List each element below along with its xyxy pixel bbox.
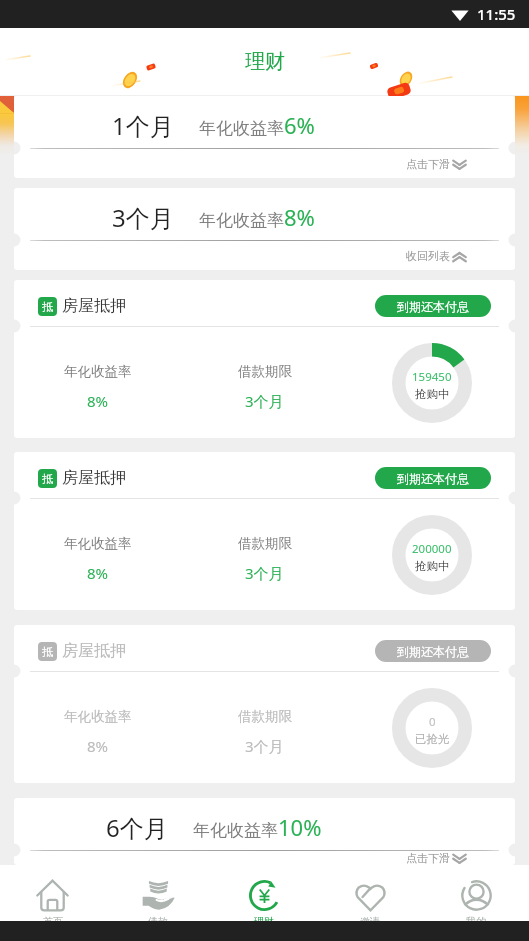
staticText: 年化收益率 <box>64 535 132 552</box>
staticText: 200000 <box>412 541 452 557</box>
staticText: 159450 <box>412 369 452 385</box>
staticText: 首页 <box>43 915 63 921</box>
button[interactable]: 邀请 <box>317 865 423 921</box>
staticText: 8% <box>87 736 109 756</box>
staticText: 年化收益率 <box>199 210 284 231</box>
staticText: 3个月 <box>245 563 284 583</box>
staticText: 3个月 <box>112 201 174 234</box>
staticText: 年化收益率 <box>193 820 278 841</box>
staticText: 3个月 <box>245 391 284 411</box>
button[interactable]: 我的 <box>423 865 529 921</box>
button[interactable]: 3个月 <box>14 188 515 270</box>
button[interactable]: 6个月 <box>14 798 515 865</box>
staticText: 借款期限 <box>238 363 292 380</box>
staticText: 已抢光 <box>415 732 450 746</box>
staticText: 1个月 <box>112 109 174 142</box>
button[interactable]: 理财 <box>211 865 317 921</box>
staticText: 0 <box>429 714 436 730</box>
staticText: 抢购中 <box>415 387 450 401</box>
staticText: 抢购中 <box>415 559 450 573</box>
staticText: 抵 <box>42 645 54 659</box>
staticText: 年化收益率 <box>64 708 132 725</box>
staticText: 借款期限 <box>238 535 292 552</box>
button[interactable]: 首页 <box>0 865 105 921</box>
button[interactable]: 抵 <box>14 452 515 610</box>
staticText: 到期还本付息 <box>397 644 469 659</box>
staticText: 点击下滑 <box>406 157 450 171</box>
staticText: 6% <box>284 110 315 140</box>
staticText: 年化收益率 <box>64 363 132 380</box>
staticText: 点击下滑 <box>406 851 450 865</box>
button[interactable]: 抵 <box>14 625 515 783</box>
button[interactable]: 1个月 <box>14 96 515 178</box>
staticText: 到期还本付息 <box>397 299 469 314</box>
staticText: 8% <box>87 563 109 583</box>
staticText: 抵 <box>42 300 54 314</box>
staticText: 3个月 <box>245 736 284 756</box>
staticText: 11:55 <box>477 4 516 24</box>
staticText: 理财 <box>254 915 274 921</box>
staticText: 房屋抵押 <box>62 296 126 316</box>
staticText: 收回列表 <box>406 249 450 263</box>
staticText: 6个月 <box>106 811 168 844</box>
button[interactable]: 借款 <box>105 865 211 921</box>
button[interactable]: 抵 <box>14 280 515 438</box>
staticText: 抵 <box>42 472 54 486</box>
staticText: 房屋抵押 <box>62 641 126 661</box>
staticText: 到期还本付息 <box>397 471 469 486</box>
staticText: 借款期限 <box>238 708 292 725</box>
staticText: 理财 <box>245 49 285 74</box>
staticText: 借款 <box>148 915 168 921</box>
staticText: 10% <box>278 812 322 842</box>
staticText: 8% <box>284 202 315 232</box>
staticText: 房屋抵押 <box>62 468 126 488</box>
staticText: 8% <box>87 391 109 411</box>
staticText: 年化收益率 <box>199 118 284 139</box>
staticText: 我的 <box>466 915 486 921</box>
staticText: 邀请 <box>360 915 380 921</box>
